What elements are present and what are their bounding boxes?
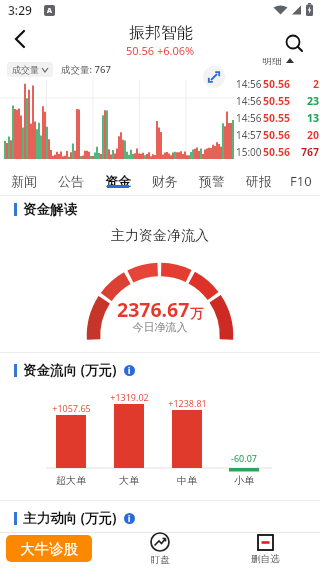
- staticText: -60.07: [231, 452, 257, 464]
- staticText: 振邦智能: [129, 23, 193, 43]
- staticText: +1057.65: [52, 402, 91, 414]
- staticText: 50.55: [263, 111, 290, 125]
- button[interactable]: 资金: [94, 166, 141, 195]
- staticText: 50.56 +6.06%: [126, 43, 195, 58]
- staticText: i: [128, 513, 131, 524]
- staticText: 50.55: [263, 94, 290, 108]
- button[interactable]: 研报: [235, 166, 282, 195]
- button[interactable]: 公告: [47, 166, 94, 195]
- staticText: 23: [307, 94, 320, 108]
- staticText: 成交量: [12, 64, 39, 75]
- button[interactable]: i: [124, 365, 135, 376]
- staticText: 20: [307, 128, 320, 142]
- staticText: 50.56: [263, 128, 290, 142]
- button[interactable]: 财务: [141, 166, 188, 195]
- staticText: 新闻: [11, 173, 37, 189]
- staticText: 大单: [119, 474, 139, 487]
- staticText: 主力动向 (万元): [23, 509, 117, 527]
- staticText: 研报: [246, 173, 272, 189]
- button[interactable]: 成交量: [12, 64, 48, 75]
- staticText: 14:56: [236, 111, 262, 125]
- staticText: 删自选: [251, 553, 280, 565]
- staticText: i: [128, 365, 131, 376]
- staticText: 14:57: [236, 128, 262, 142]
- staticText: 资金流向 (万元): [23, 361, 117, 379]
- staticText: 2: [313, 77, 320, 91]
- staticText: 主力资金净流入: [0, 227, 320, 245]
- button[interactable]: i: [124, 513, 135, 524]
- staticText: 50.56: [263, 77, 290, 91]
- staticText: 14:56: [236, 77, 262, 91]
- button[interactable]: [280, 29, 308, 57]
- staticText: 资金解读: [23, 201, 77, 218]
- button[interactable]: 预警: [188, 166, 235, 195]
- staticText: 今日净流入: [0, 320, 320, 334]
- staticText: 767: [301, 145, 320, 159]
- button[interactable]: F10: [282, 166, 320, 195]
- button[interactable]: 删自选: [245, 533, 285, 565]
- staticText: F10: [290, 172, 312, 190]
- button[interactable]: 盯盘: [140, 532, 180, 566]
- staticText: 2376.67: [117, 296, 190, 323]
- staticText: 公告: [58, 173, 84, 189]
- staticText: +1319.02: [110, 391, 149, 403]
- staticText: 中单: [177, 474, 197, 487]
- staticText: 预警: [199, 173, 225, 189]
- staticText: 资金: [105, 173, 131, 189]
- staticText: 小单: [234, 474, 254, 487]
- staticText: 大牛诊股: [20, 540, 78, 558]
- staticText: 成交量: 767: [61, 63, 111, 76]
- button[interactable]: [6, 25, 34, 53]
- staticText: +1238.81: [168, 397, 207, 409]
- staticText: 盯盘: [151, 554, 170, 566]
- staticText: 3:29: [8, 2, 32, 18]
- staticText: 明细: [262, 58, 282, 67]
- staticText: A: [47, 6, 52, 16]
- staticText: 财务: [152, 173, 178, 189]
- button[interactable]: [203, 66, 225, 88]
- button[interactable]: 新闻: [0, 166, 47, 195]
- staticText: 万: [190, 305, 203, 321]
- staticText: 超大单: [56, 474, 86, 487]
- staticText: 13: [307, 111, 320, 125]
- staticText: 50.56: [263, 145, 290, 159]
- staticText: 15:00: [236, 145, 262, 159]
- button[interactable]: 大牛诊股: [6, 535, 92, 562]
- staticText: 14:56: [236, 94, 262, 108]
